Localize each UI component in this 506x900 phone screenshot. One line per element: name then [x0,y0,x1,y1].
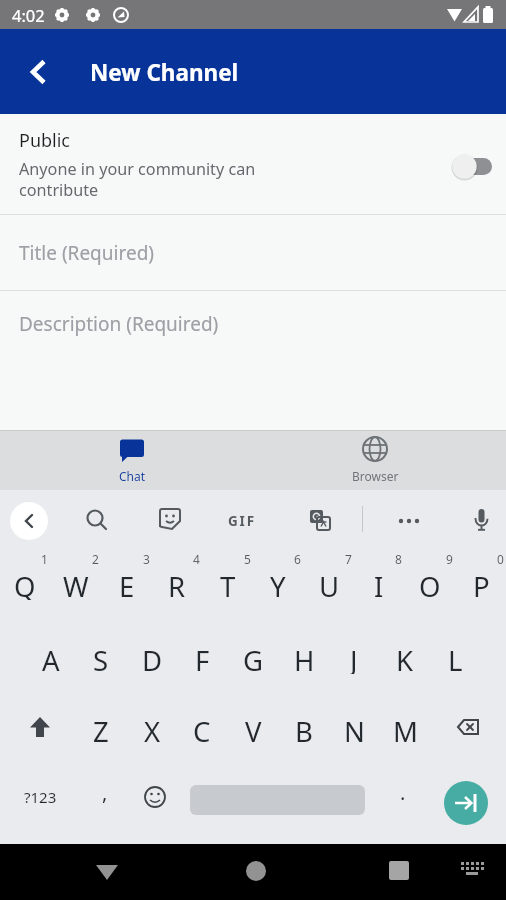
staticText: Q [14,568,36,600]
staticText: Y [270,568,286,600]
button[interactable]: T [203,568,253,600]
button[interactable]: Chat [92,430,172,490]
button[interactable] [389,501,429,541]
staticText: , [102,779,108,806]
staticText: Public [19,128,71,153]
staticText: B [295,713,313,745]
button[interactable] [135,781,175,813]
button[interactable]: Public [0,114,506,214]
staticText: Chat [119,468,146,484]
button[interactable]: U [304,568,354,600]
button[interactable]: E [102,568,152,600]
button[interactable] [299,501,339,541]
button[interactable] [20,713,60,745]
staticText: M [393,713,418,745]
button[interactable] [377,849,421,893]
staticText: X [144,713,161,745]
staticText: 1 [41,551,48,565]
button[interactable] [234,849,278,893]
staticText: Anyone in your community can contribute [19,158,256,201]
staticText: J [350,642,358,674]
staticText: I [374,568,384,600]
button[interactable]: Description (Required) [0,291,506,430]
button[interactable]: D [127,642,177,674]
button[interactable] [85,849,129,893]
button[interactable]: Z [76,713,126,745]
button[interactable]: V [228,713,278,745]
staticText: . [400,779,406,806]
staticText: N [344,713,365,745]
button[interactable]: J [329,642,379,674]
button[interactable]: , [80,776,130,808]
button[interactable]: F [177,642,227,674]
staticText: 0 [497,551,504,565]
staticText: C [193,713,211,745]
staticText: 7 [345,551,352,565]
staticText: 5 [244,551,251,565]
staticText: 9 [446,551,453,565]
staticText: V [245,713,262,745]
staticText: 4:02 [12,4,45,26]
button[interactable] [445,713,485,745]
staticText: 8 [395,551,402,565]
staticText: T [220,568,236,600]
staticText: K [396,642,414,674]
button[interactable]: GIF [228,512,256,530]
button[interactable]: Y [253,568,303,600]
button[interactable] [77,501,117,541]
staticText: H [294,642,315,674]
button[interactable]: R [152,568,202,600]
staticText: 2 [92,551,99,565]
button[interactable] [450,849,494,893]
staticText: GIF [228,512,256,530]
staticText: O [419,568,441,600]
staticText: New Channel [90,57,239,88]
button[interactable]: C [177,713,227,745]
staticText: R [168,568,186,600]
staticText: 6 [294,551,301,565]
button[interactable]: Q [0,568,50,600]
button[interactable]: K [380,642,430,674]
staticText: U [319,568,340,600]
staticText: P [473,568,490,600]
staticText: F [195,642,210,674]
button[interactable] [444,781,488,825]
button[interactable]: N [329,713,379,745]
staticText: W [63,568,89,600]
button[interactable]: O [405,568,455,600]
button[interactable]: Title (Required) [0,215,506,290]
button[interactable]: L [430,642,480,674]
button[interactable]: X [127,713,177,745]
staticText: S [93,642,109,674]
staticText: G [243,642,264,674]
button[interactable]: I [354,568,404,600]
staticText: ?123 [24,787,57,807]
staticText: Description (Required) [19,311,219,337]
staticText: Z [93,713,109,745]
button[interactable]: A [26,642,76,674]
staticText: D [142,642,163,674]
staticText: L [448,642,463,674]
button[interactable]: W [51,568,101,600]
staticText: E [119,568,135,600]
staticText: 4 [193,551,200,565]
button[interactable]: H [279,642,329,674]
button[interactable] [461,501,501,541]
button[interactable] [20,53,56,89]
button[interactable]: G [228,642,278,674]
button[interactable] [10,502,48,540]
button[interactable]: . [378,776,428,808]
button[interactable]: B [279,713,329,745]
staticText: Browser [352,468,399,484]
staticText: 3 [143,551,150,565]
button[interactable]: M [380,713,430,745]
staticText: Title (Required) [19,240,155,266]
staticText: A [42,642,60,674]
button[interactable]: P [456,568,506,600]
button[interactable]: Browser [335,430,415,490]
button[interactable]: S [76,642,126,674]
button[interactable] [150,501,190,541]
button[interactable]: ?123 [12,781,68,813]
